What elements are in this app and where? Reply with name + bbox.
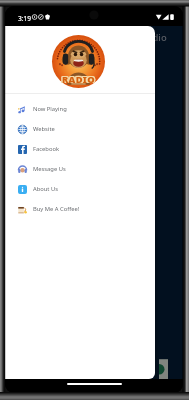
staticText: RADIO xyxy=(62,73,95,86)
button[interactable]: About Us xyxy=(5,179,155,199)
staticText: RADIO xyxy=(61,72,94,85)
button[interactable]: Now Playing xyxy=(5,99,155,119)
staticText: 3:19 xyxy=(18,14,32,23)
staticText: RADIO xyxy=(62,72,95,85)
button[interactable]: Buy Me A Coffee! xyxy=(5,199,155,219)
button[interactable]: Facebook xyxy=(5,139,155,159)
button[interactable]: Message Us xyxy=(5,159,155,179)
button[interactable]: Website xyxy=(5,119,155,139)
staticText: Buy Me A Coffee! xyxy=(33,205,80,213)
staticText: RADIO xyxy=(61,73,94,86)
staticText: Facebook xyxy=(33,145,59,153)
button[interactable]: Play xyxy=(5,26,183,379)
staticText: RADIO xyxy=(61,73,94,86)
staticText: RADIO xyxy=(63,73,96,86)
staticText: RADIO xyxy=(63,72,96,85)
staticText: Now Playing xyxy=(33,105,67,113)
staticText: Radio xyxy=(141,31,167,44)
staticText: Message Us xyxy=(33,165,66,173)
staticText: Website xyxy=(33,125,55,133)
staticText: RADIO xyxy=(62,73,95,86)
staticText: About Us xyxy=(33,185,58,193)
staticText: RADIO xyxy=(63,73,96,86)
